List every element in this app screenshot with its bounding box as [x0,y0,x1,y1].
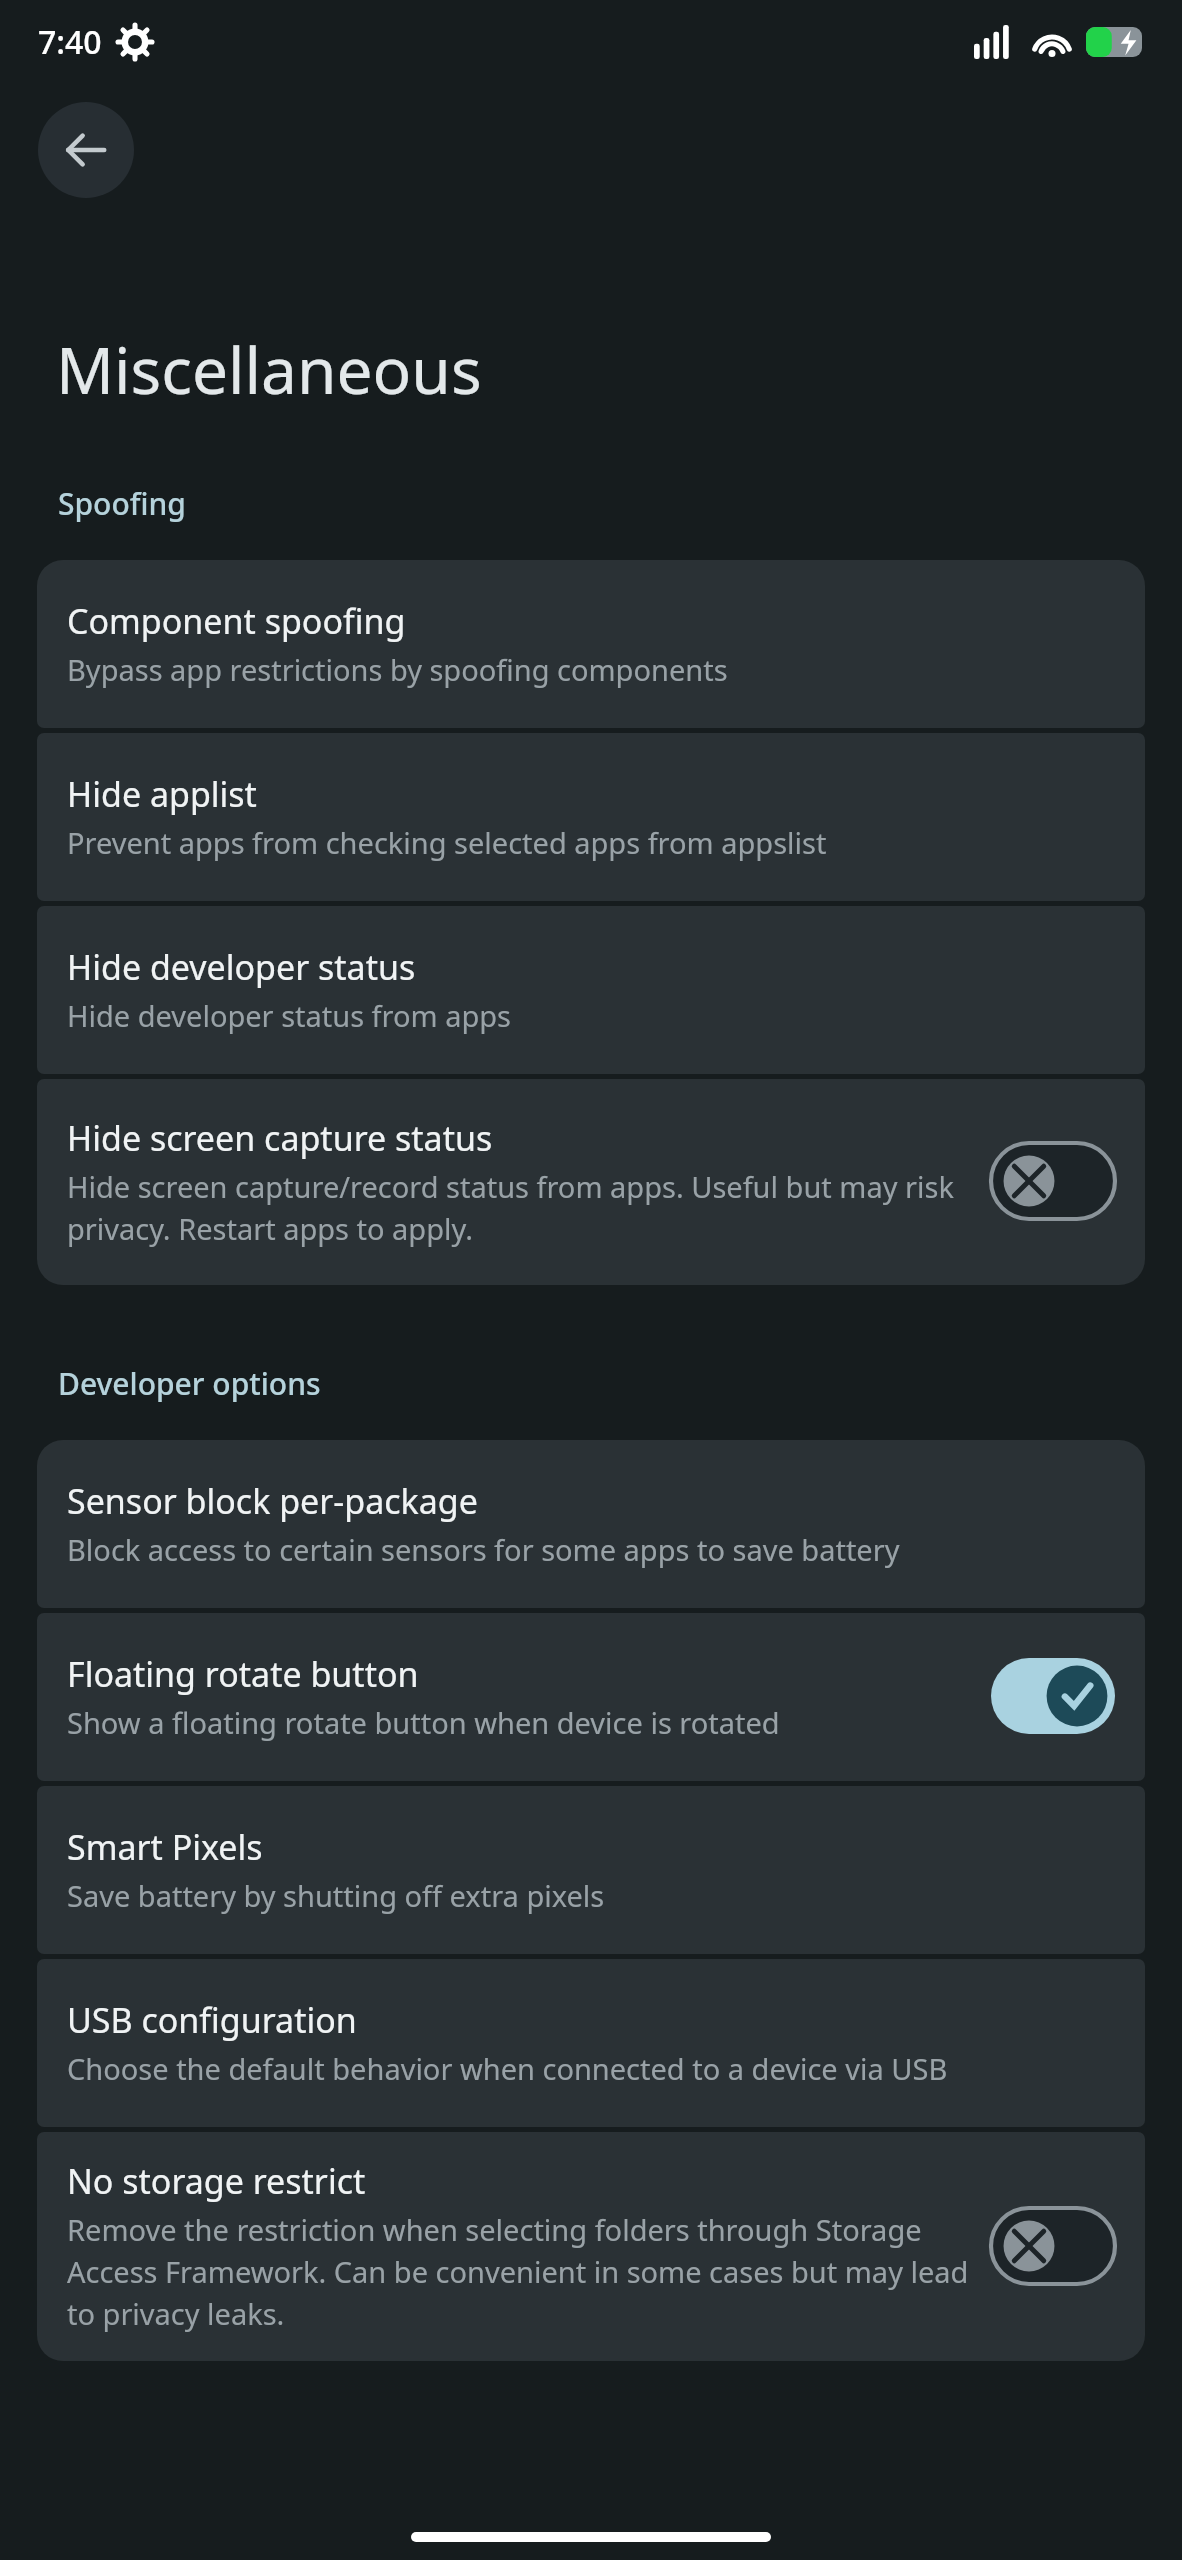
staticText: Smart Pixels [67,1824,263,1870]
button[interactable]: Floating rotate button [37,1613,1145,1781]
staticText: Prevent apps from checking selected apps… [67,823,827,862]
staticText: Component spoofing [67,598,406,644]
button[interactable]: No storage restrict [37,2132,1145,2361]
staticText: Choose the default behavior when connect… [67,2049,948,2088]
staticText: Hide applist [67,771,257,817]
staticText: USB configuration [67,1997,357,2043]
button[interactable]: Hide developer status [37,906,1145,1074]
staticText: Remove the restriction when selecting fo… [67,2210,969,2333]
staticText: Block access to certain sensors for some… [67,1530,900,1569]
button[interactable]: Component spoofing [37,560,1145,728]
staticText: Developer options [58,1363,321,1404]
staticText: Hide developer status from apps [67,996,511,1035]
staticText: Hide developer status [67,944,416,990]
staticText: Spoofing [58,483,186,524]
button[interactable]: Toggle on [991,1658,1115,1734]
button[interactable]: USB configuration [37,1959,1145,2127]
button[interactable]: Hide applist [37,733,1145,901]
staticText: Bypass app restrictions by spoofing comp… [67,650,728,689]
button[interactable]: Sensor block per-package [37,1440,1145,1608]
staticText: Save battery by shutting off extra pixel… [67,1876,605,1915]
staticText: No storage restrict [67,2158,366,2204]
staticText: Sensor block per-package [67,1478,478,1524]
staticText: Hide screen capture status [67,1115,493,1161]
button[interactable]: Smart Pixels [37,1786,1145,1954]
staticText: Show a floating rotate button when devic… [67,1703,780,1742]
staticText: 7:40 [38,20,102,64]
button[interactable]: Toggle off [991,1143,1115,1219]
button[interactable]: Back [38,102,134,198]
button[interactable]: Toggle off [991,2208,1115,2284]
staticText: Floating rotate button [67,1651,419,1697]
button[interactable]: Hide screen capture status [37,1079,1145,1285]
staticText: Hide screen capture/record status from a… [67,1167,969,1248]
staticText: Miscellaneous [56,326,482,413]
